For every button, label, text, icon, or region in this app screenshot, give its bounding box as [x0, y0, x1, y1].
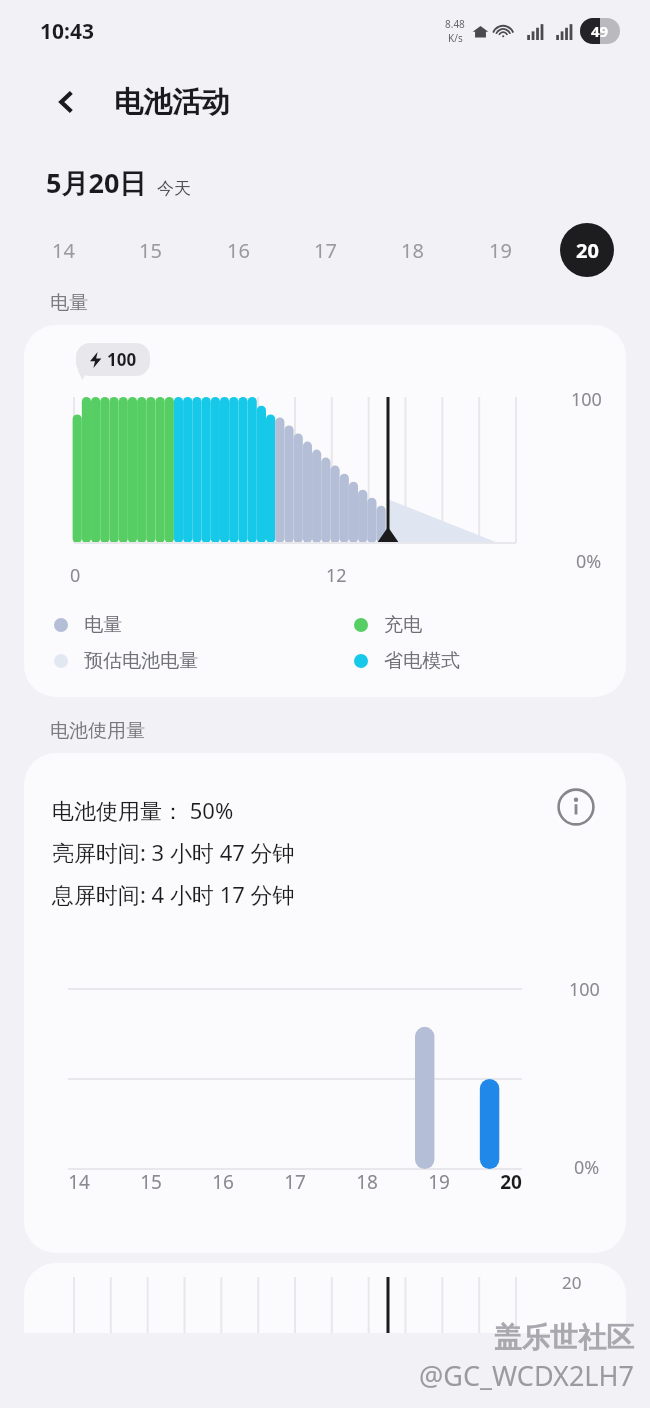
button[interactable]: 18 [385, 223, 439, 277]
staticText: 10:43 [40, 17, 94, 46]
staticText: 16 [212, 1169, 234, 1195]
staticText: 16 [227, 237, 250, 264]
staticText: 17 [284, 1169, 306, 1195]
staticText: 18 [356, 1169, 378, 1195]
staticText: 100 [569, 977, 600, 1002]
button[interactable]: Info [550, 781, 602, 833]
staticText: 12 [326, 563, 347, 588]
staticText: 5月20日 [46, 164, 147, 201]
staticText: 14 [68, 1169, 90, 1195]
button[interactable]: Back [44, 79, 90, 125]
staticText: 预估电池电量 [84, 649, 198, 673]
staticText: 盖乐世社区 [494, 1320, 634, 1355]
button[interactable]: 19 [473, 223, 527, 277]
staticText: 电池使用量： 50% [52, 795, 234, 825]
staticText: 20 [500, 1169, 522, 1195]
staticText: 100 [571, 387, 602, 412]
button[interactable]: 20 [560, 223, 614, 277]
button[interactable]: 电池使用量： 50% [24, 753, 626, 1253]
staticText: @GC_WCDX2LH7 [419, 1357, 634, 1394]
button[interactable]: 100 [24, 325, 626, 697]
staticText: 充电 [384, 613, 422, 637]
staticText: 15 [139, 237, 162, 264]
button[interactable]: 14 [36, 223, 90, 277]
staticText: 20 [562, 1271, 582, 1294]
button[interactable]: 16 [211, 223, 265, 277]
staticText: 19 [489, 237, 512, 264]
staticText: 20 [576, 237, 599, 264]
staticText: K/s [448, 31, 463, 45]
staticText: 19 [428, 1169, 450, 1195]
staticText: 电量 [84, 613, 122, 637]
staticText: 49 [591, 21, 609, 41]
button[interactable]: 15 [123, 223, 177, 277]
staticText: 17 [314, 237, 337, 264]
staticText: 14 [52, 237, 75, 264]
staticText: 100 [107, 348, 137, 371]
staticText: 省电模式 [384, 649, 460, 673]
button[interactable]: 20 [24, 1263, 626, 1333]
staticText: 息屏时间: 4 小时 17 分钟 [52, 879, 295, 909]
staticText: 今天 [157, 178, 191, 199]
staticText: 电量 [50, 291, 88, 315]
staticText: 15 [140, 1169, 162, 1195]
staticText: 电池使用量 [50, 719, 145, 743]
staticText: 亮屏时间: 3 小时 47 分钟 [52, 837, 295, 867]
button[interactable]: 17 [298, 223, 352, 277]
staticText: 电池活动 [114, 84, 230, 121]
staticText: 18 [401, 237, 424, 264]
staticText: 0% [574, 1155, 600, 1180]
staticText: 0 [70, 563, 81, 588]
staticText: 8.48 [445, 17, 465, 31]
staticText: 0% [576, 549, 602, 574]
